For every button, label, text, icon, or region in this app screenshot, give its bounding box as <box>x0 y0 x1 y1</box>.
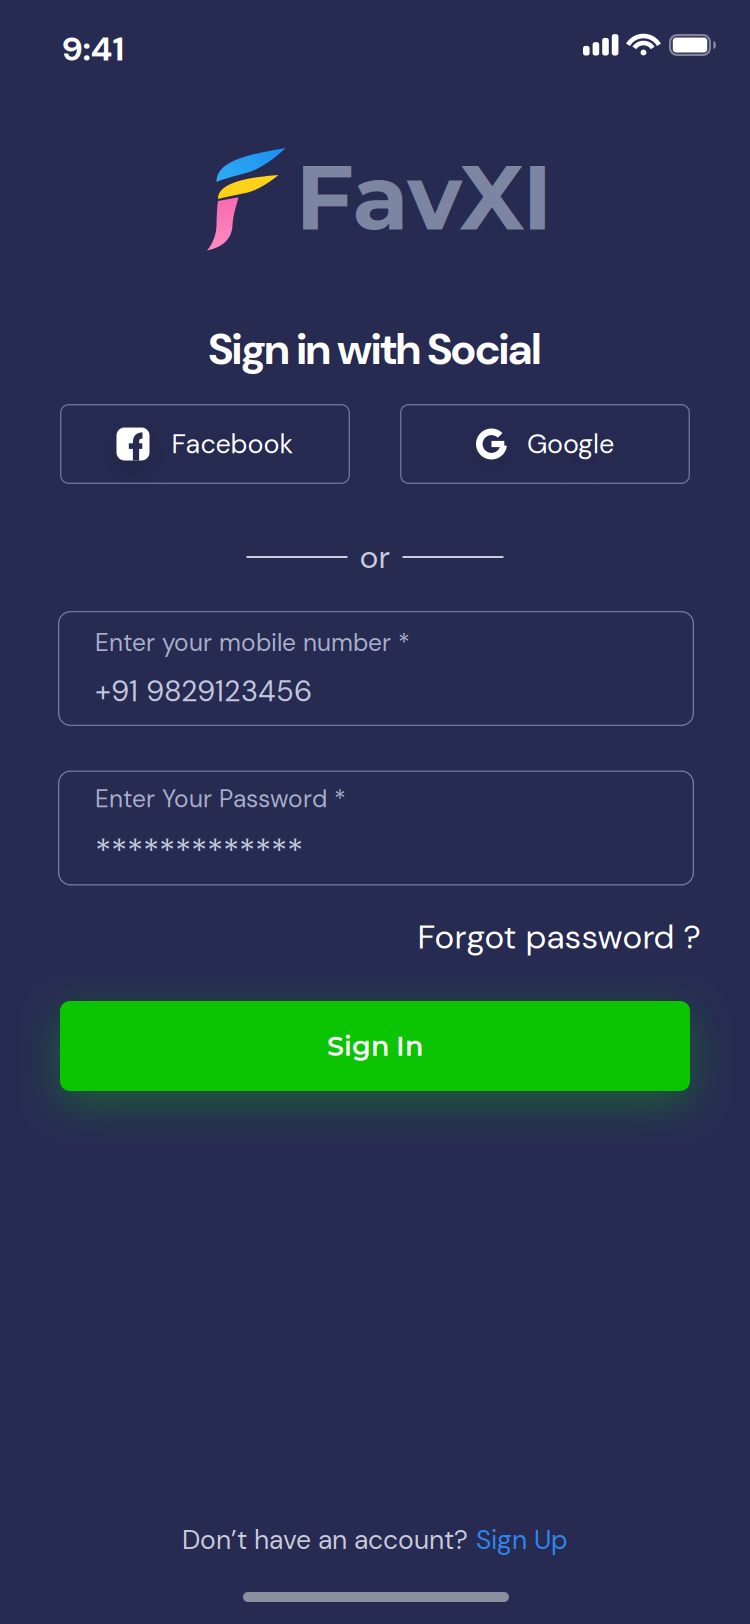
staticText: FavXI <box>295 141 552 252</box>
staticText: Don’t have an account? <box>182 1523 468 1557</box>
button[interactable]: Forgot password ? <box>417 915 700 959</box>
staticText: +91 9829123456 <box>95 673 312 710</box>
staticText: 9:41 <box>61 27 124 71</box>
staticText: Sign Up <box>476 1523 568 1557</box>
button[interactable]: Enter Your Password * <box>58 770 694 885</box>
staticText: ************* <box>95 829 303 873</box>
button[interactable]: Google <box>400 404 690 484</box>
button[interactable]: Sign Up <box>476 1523 568 1557</box>
staticText: Enter Your Password * <box>95 783 346 815</box>
staticText: Sign in with Social <box>208 320 542 378</box>
staticText: Google <box>527 426 614 462</box>
staticText: Facebook <box>171 426 293 462</box>
staticText: Enter your mobile number * <box>95 627 410 659</box>
staticText: Sign In <box>327 1029 423 1062</box>
button[interactable]: Sign In <box>60 1001 690 1091</box>
button[interactable]: Enter your mobile number * <box>58 611 694 726</box>
button[interactable]: Facebook <box>60 404 350 484</box>
staticText: or <box>359 536 390 578</box>
staticText: Forgot password ? <box>417 915 700 959</box>
